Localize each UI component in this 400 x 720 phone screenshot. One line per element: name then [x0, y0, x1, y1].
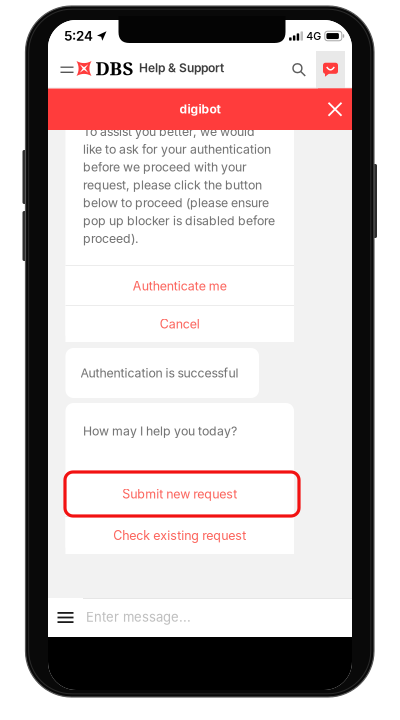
- staticText: Authentication is successful: [80, 366, 238, 380]
- staticText: Submit new request: [122, 486, 237, 501]
- staticText: How may I help you today?: [83, 424, 237, 438]
- staticText: Cancel: [160, 316, 200, 331]
- staticText: digibot: [179, 102, 220, 116]
- staticText: Authenticate me: [133, 278, 227, 293]
- staticText: DBS: [95, 55, 133, 81]
- staticText: Help & Support: [139, 61, 224, 75]
- staticText: Check existing request: [113, 528, 246, 543]
- button[interactable]: Search: [282, 51, 316, 88]
- button[interactable]: Chat: [316, 51, 345, 88]
- staticText: 5:24: [64, 28, 93, 44]
- button[interactable]: Check existing request: [65, 517, 294, 554]
- button[interactable]: Submit new request: [65, 472, 294, 516]
- staticText: 4G: [306, 29, 321, 42]
- staticText: To assist you better, we would like to a…: [83, 124, 275, 246]
- button[interactable]: Menu: [55, 51, 79, 88]
- staticText: Enter message...: [86, 609, 191, 625]
- button[interactable]: Close: [318, 88, 352, 130]
- button[interactable]: Cancel: [65, 306, 294, 342]
- button[interactable]: Authenticate me: [65, 266, 294, 306]
- button[interactable]: Menu: [48, 598, 83, 637]
